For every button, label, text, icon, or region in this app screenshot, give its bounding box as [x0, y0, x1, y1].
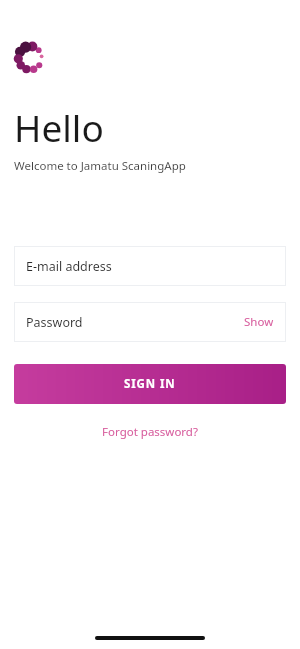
other: Home [95, 636, 205, 640]
button[interactable]: E-mail address [14, 246, 286, 286]
button[interactable]: SIGN IN [14, 364, 286, 404]
staticText: Hello [14, 102, 104, 152]
staticText: Forgot password? [102, 424, 198, 440]
button[interactable]: Forgot password? [94, 422, 206, 442]
staticText: SIGN IN [124, 376, 176, 392]
staticText: E-mail address [26, 258, 112, 275]
button[interactable]: Password [14, 302, 286, 342]
staticText: Password [26, 314, 83, 331]
staticText: Welcome to Jamatu ScaningApp [14, 158, 186, 174]
staticText: Show [244, 314, 274, 330]
button[interactable]: Show [244, 314, 274, 330]
